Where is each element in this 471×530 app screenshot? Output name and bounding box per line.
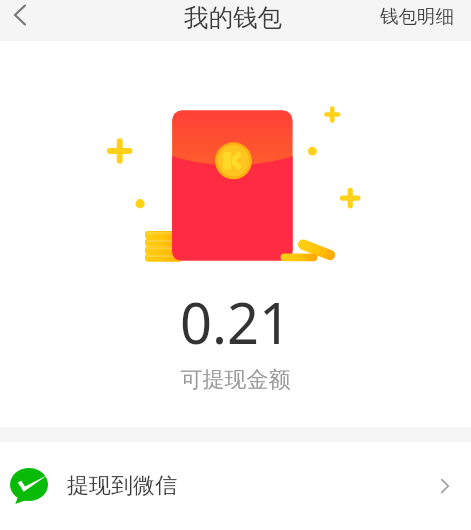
button[interactable]: 提现到微信 [0,454,471,518]
staticText: 钱包明细 [380,5,454,28]
button[interactable]: 钱包明细 [363,0,471,37]
staticText: 可提现金额 [0,366,471,394]
staticText: 我的钱包 [184,2,282,33]
staticText: 0.21 [0,284,471,360]
staticText: 提现到微信 [67,472,177,500]
button[interactable]: Back [0,0,40,35]
